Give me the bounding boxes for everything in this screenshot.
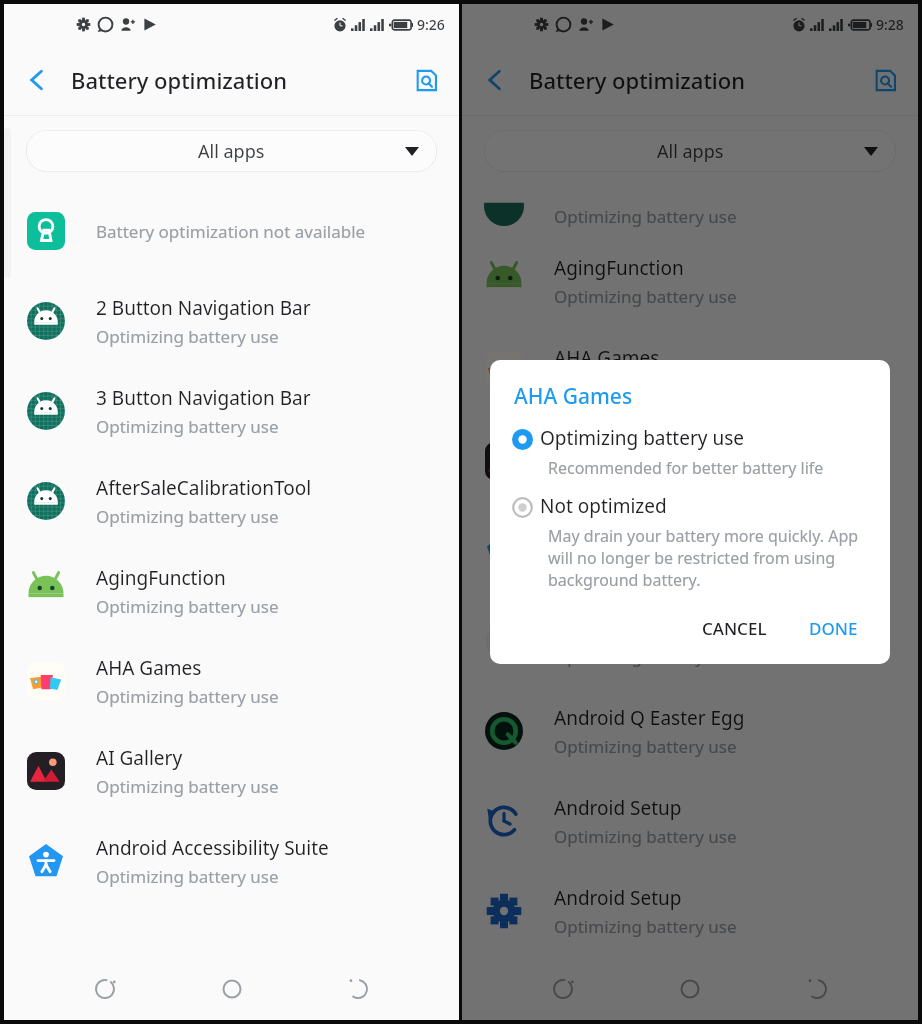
staticText: AHA Games xyxy=(96,655,202,681)
staticText: Android Accessibility Suite xyxy=(554,525,787,551)
staticText: May drain your battery more quickly. App… xyxy=(548,525,872,591)
staticText: Optimizing battery use xyxy=(554,735,737,758)
staticText: AI Gallery xyxy=(96,745,183,771)
staticText: Optimizing battery use xyxy=(96,595,279,618)
staticText: Android Accessibility Suite xyxy=(96,835,329,861)
staticText: Android Q Easter Egg xyxy=(554,705,745,731)
button[interactable]: AI Gallery xyxy=(462,416,918,506)
button[interactable]: 2 Button Navigation Bar xyxy=(4,276,459,366)
staticText: 3 Button Navigation Bar xyxy=(96,385,311,411)
button[interactable]: Android Accessibility Suite xyxy=(4,816,459,906)
button[interactable]: Battery optimization not available xyxy=(4,186,459,276)
button[interactable]: Android Auto xyxy=(462,596,918,686)
staticText: Optimizing battery use xyxy=(96,325,279,348)
button[interactable]: Home xyxy=(206,963,258,1015)
staticText: Optimizing battery use xyxy=(96,415,279,438)
button[interactable]: All apps xyxy=(26,130,437,172)
staticText: Optimizing battery use xyxy=(554,375,737,398)
staticText: All apps xyxy=(657,139,724,164)
staticText: AHA Games xyxy=(554,345,660,371)
button[interactable]: Android Accessibility Suite xyxy=(462,506,918,596)
button[interactable]: AHA Games xyxy=(462,326,918,416)
staticText: Optimizing battery use xyxy=(540,425,744,451)
button[interactable]: Optimizing battery use xyxy=(490,423,890,481)
staticText: Optimizing battery use xyxy=(96,505,279,528)
button[interactable]: Back xyxy=(791,963,843,1015)
button[interactable]: All apps xyxy=(484,130,896,172)
button[interactable]: AHA Games xyxy=(4,636,459,726)
staticText: Optimizing battery use xyxy=(554,555,737,578)
button[interactable]: 3 Button Navigation Bar xyxy=(4,366,459,456)
staticText: Android Setup xyxy=(554,885,682,911)
staticText: 9:28 xyxy=(876,15,904,34)
button[interactable]: AI Gallery xyxy=(4,726,459,816)
staticText: DONE xyxy=(809,617,858,640)
staticText: Android Setup xyxy=(554,795,682,821)
staticText: Optimizing battery use xyxy=(96,775,279,798)
staticText: Optimizing battery use xyxy=(96,865,279,888)
staticText: Optimizing battery use xyxy=(554,825,737,848)
button[interactable]: Back xyxy=(472,57,518,103)
staticText: 2 Button Navigation Bar xyxy=(96,295,311,321)
button[interactable]: Android Setup xyxy=(462,866,918,956)
staticText: AgingFunction xyxy=(554,255,684,281)
button[interactable]: CANCEL xyxy=(688,607,781,650)
staticText: AI Gallery xyxy=(554,435,641,461)
button[interactable]: Search xyxy=(405,59,447,101)
button[interactable]: DONE xyxy=(795,607,872,650)
button[interactable]: AgingFunction xyxy=(4,546,459,636)
staticText: Optimizing battery use xyxy=(554,465,737,488)
staticText: All apps xyxy=(198,139,265,164)
button[interactable]: Recent apps xyxy=(79,963,131,1015)
staticText: Recommended for better battery life xyxy=(548,457,824,479)
staticText: CANCEL xyxy=(702,617,767,640)
button[interactable]: Not optimized xyxy=(490,491,890,593)
staticText: Optimizing battery use xyxy=(554,285,737,308)
button[interactable]: Back xyxy=(332,963,384,1015)
staticText: Optimizing battery use xyxy=(554,205,737,228)
button[interactable]: Recent apps xyxy=(537,963,589,1015)
staticText: AHA Games xyxy=(514,382,633,411)
button[interactable]: Android Q Easter Egg xyxy=(462,686,918,776)
staticText: Optimizing battery use xyxy=(554,645,737,668)
staticText: AgingFunction xyxy=(96,565,226,591)
button[interactable]: Back xyxy=(14,57,60,103)
staticText: 9:26 xyxy=(417,15,445,34)
staticText: Optimizing battery use xyxy=(554,915,737,938)
staticText: Battery optimization xyxy=(529,65,745,95)
staticText: Battery optimization xyxy=(71,65,287,95)
button[interactable]: Home xyxy=(664,963,716,1015)
button[interactable]: AfterSaleCalibrationTool xyxy=(4,456,459,546)
staticText: Optimizing battery use xyxy=(96,685,279,708)
button[interactable]: AgingFunction xyxy=(462,236,918,326)
staticText: Not optimized xyxy=(540,493,667,519)
staticText: AfterSaleCalibrationTool xyxy=(96,475,312,501)
button[interactable]: Android Setup xyxy=(462,776,918,866)
staticText: Battery optimization not available xyxy=(96,220,366,243)
button[interactable]: Search xyxy=(864,59,906,101)
